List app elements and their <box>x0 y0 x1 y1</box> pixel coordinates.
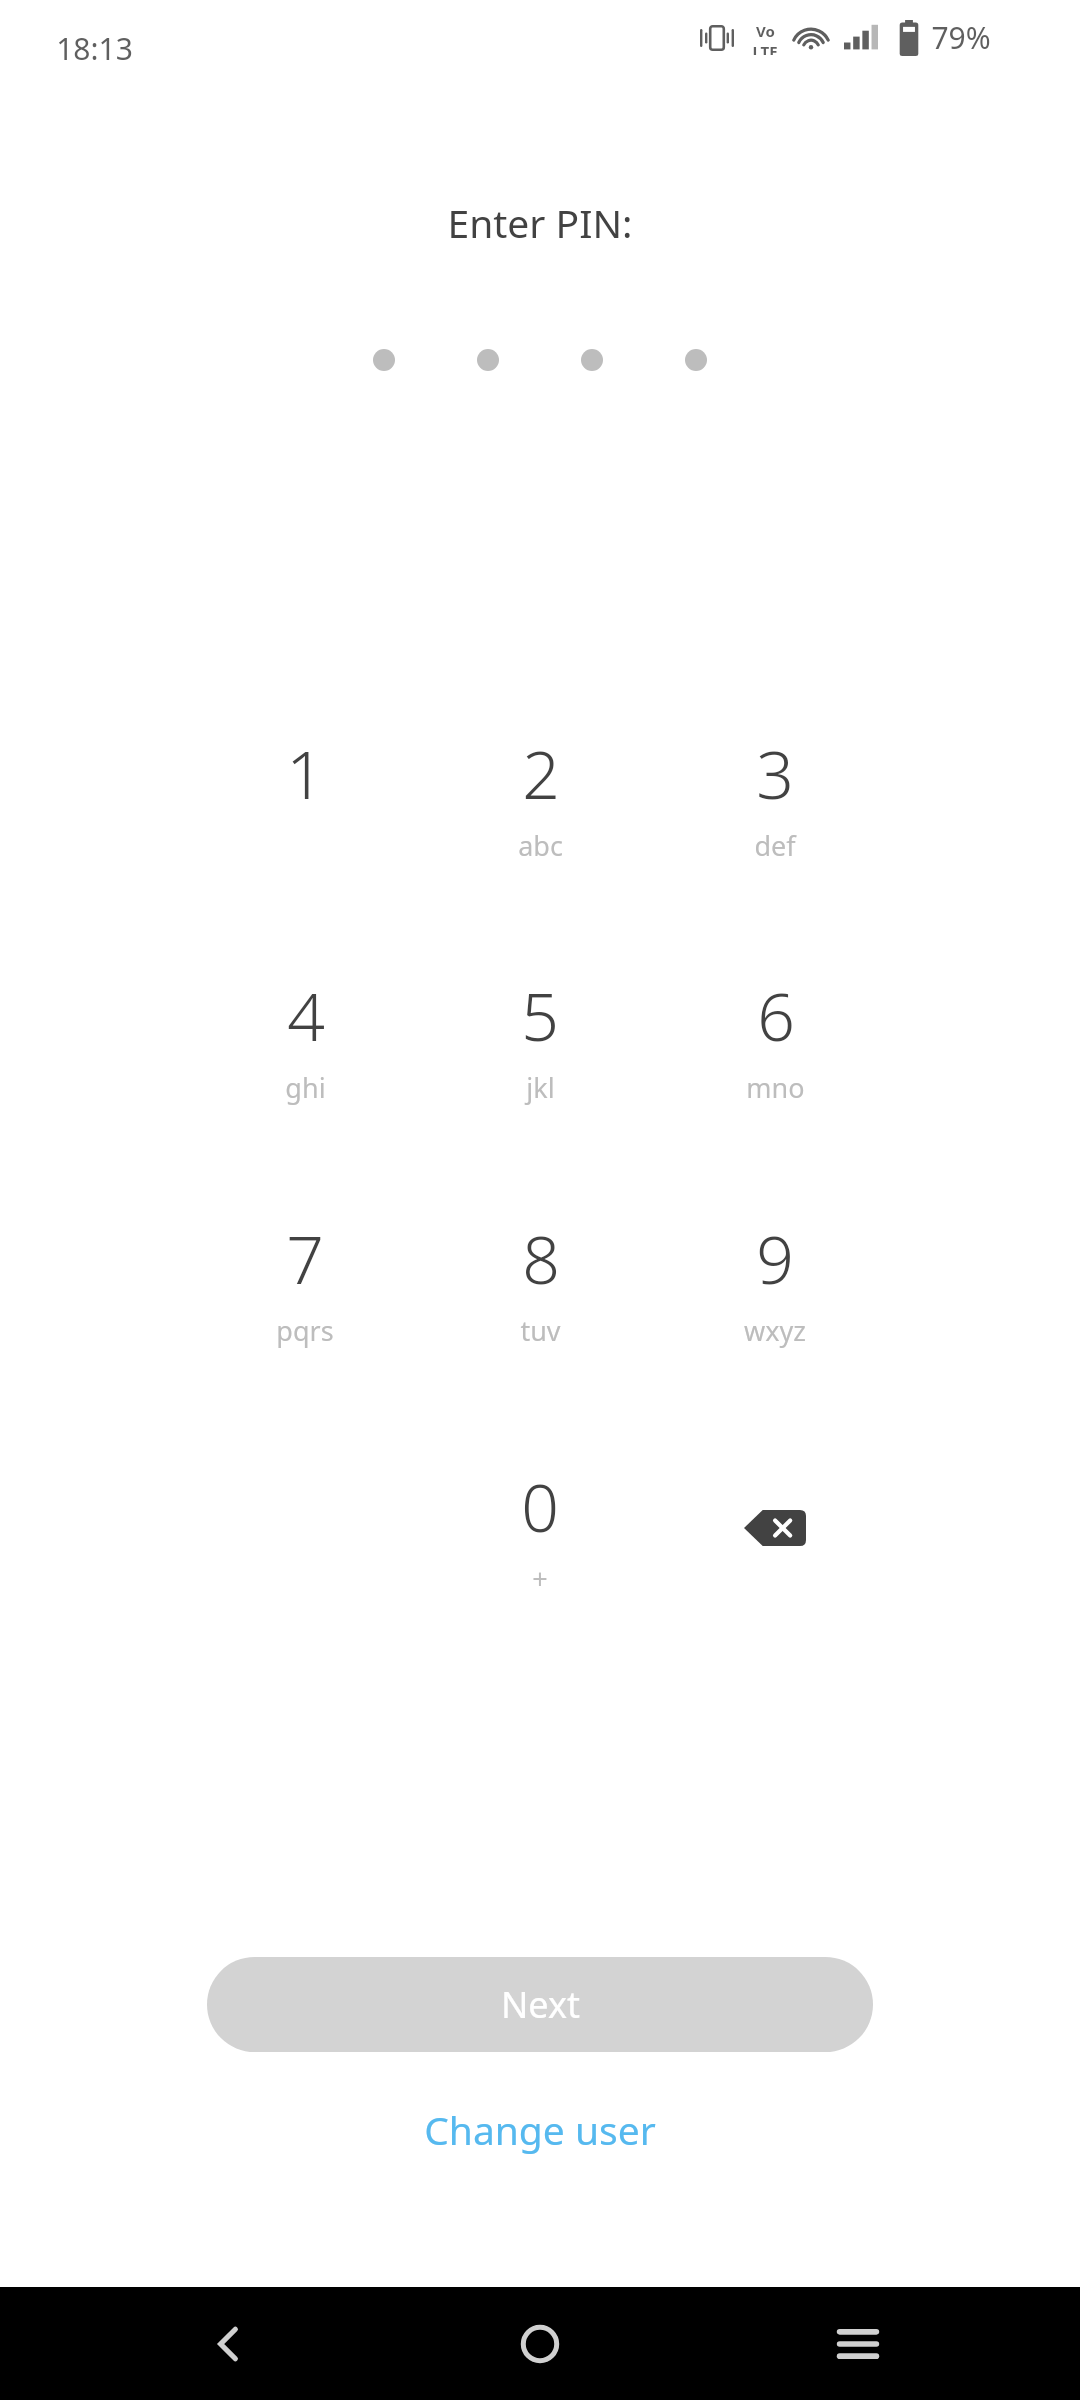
staticText: 5 <box>521 970 559 1060</box>
staticText: 0 <box>521 1461 559 1551</box>
staticText: ghi <box>285 1069 326 1106</box>
staticText: 4 <box>287 970 325 1060</box>
staticText: Enter PIN: <box>447 196 633 249</box>
button[interactable]: 8 <box>440 1210 640 1410</box>
button[interactable]: 3 <box>675 725 875 925</box>
button[interactable]: Next <box>207 1957 873 2052</box>
staticText: Next <box>501 1980 580 2029</box>
staticText: 79% <box>931 17 991 58</box>
button[interactable]: Home <box>480 2287 600 2400</box>
staticText: 6 <box>757 970 795 1060</box>
staticText: tuv <box>520 1312 561 1349</box>
button[interactable]: 9 <box>675 1210 875 1410</box>
button[interactable]: 2 <box>440 725 640 925</box>
staticText: 7 <box>286 1213 324 1303</box>
staticText: 3 <box>756 728 794 818</box>
button[interactable]: 5 <box>440 967 640 1167</box>
staticText: abc <box>518 827 563 864</box>
staticText: LTE <box>752 41 778 55</box>
staticText: + <box>532 1560 548 1597</box>
staticText: 2 <box>522 728 560 818</box>
button[interactable]: 0 <box>440 1458 640 1658</box>
button[interactable]: 7 <box>205 1210 405 1410</box>
staticText: Change user <box>424 2103 656 2156</box>
button[interactable]: 4 <box>205 967 405 1167</box>
staticText: mno <box>746 1069 805 1106</box>
staticText: 1 <box>286 728 324 818</box>
staticText: 9 <box>756 1213 794 1303</box>
button[interactable]: Change user <box>330 2092 750 2166</box>
staticText: Vo <box>756 21 775 41</box>
staticText: pqrs <box>276 1312 334 1349</box>
button[interactable]: Back <box>168 2287 288 2400</box>
button[interactable]: Recent apps <box>798 2287 918 2400</box>
staticText: 18:13 <box>56 28 133 69</box>
staticText: jkl <box>526 1069 555 1106</box>
button[interactable]: Backspace <box>695 1463 855 1593</box>
staticText: wxyz <box>744 1312 806 1349</box>
staticText: 8 <box>522 1213 560 1303</box>
button[interactable]: 6 <box>675 967 875 1167</box>
staticText: def <box>754 827 796 864</box>
button[interactable]: 1 <box>205 725 405 925</box>
